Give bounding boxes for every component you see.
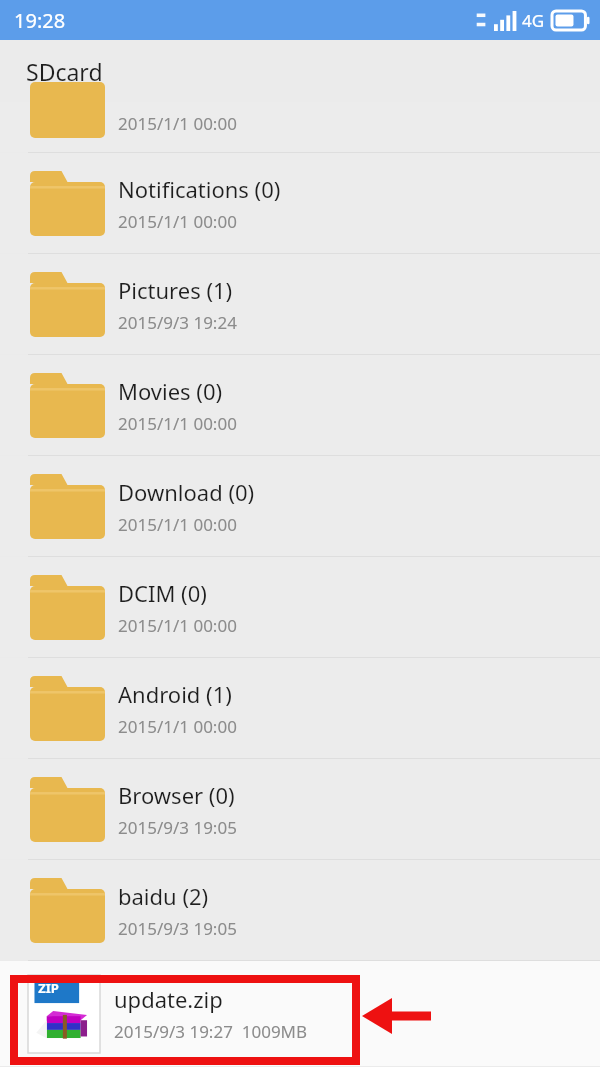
staticText: 2015/1/1 00:00 xyxy=(118,412,237,435)
staticText: Notifications (0) xyxy=(118,174,281,204)
staticText: Android (1) xyxy=(118,679,232,709)
staticText: update.zip xyxy=(114,984,223,1014)
staticText: Download (0) xyxy=(118,477,255,507)
staticText: Movies (0) xyxy=(118,376,223,406)
staticText: DCIM (0) xyxy=(118,578,207,608)
button[interactable]: Browser (0) xyxy=(0,759,600,859)
staticText: 2015/1/1 00:00 xyxy=(118,715,237,738)
staticText: 2015/1/1 00:00 xyxy=(118,513,237,536)
button[interactable]: Movies (0) xyxy=(0,355,600,455)
button[interactable]: Android (1) xyxy=(0,658,600,758)
button[interactable]: 2015/1/1 00:00 xyxy=(0,102,600,152)
staticText: 2015/9/3 19:05 xyxy=(118,917,237,940)
staticText: 2015/1/1 00:00 xyxy=(118,614,237,637)
staticText: 2015/1/1 00:00 xyxy=(118,112,237,135)
staticText: Browser (0) xyxy=(118,780,235,810)
button[interactable]: baidu (2) xyxy=(0,860,600,960)
staticText: Pictures (1) xyxy=(118,275,233,305)
staticText: ZIP xyxy=(38,979,59,997)
staticText: baidu (2) xyxy=(118,881,209,911)
staticText: SDcard xyxy=(26,56,103,87)
staticText: 2015/9/3 19:05 xyxy=(118,816,237,839)
button[interactable]: ZIP archive file xyxy=(0,961,600,1066)
other: ZIP archive file xyxy=(28,975,100,1053)
button[interactable]: Download (0) xyxy=(0,456,600,556)
staticText: 2015/1/1 00:00 xyxy=(118,210,237,233)
staticText: 19:28 xyxy=(14,7,66,34)
button[interactable]: Notifications (0) xyxy=(0,153,600,253)
button[interactable]: SDcard xyxy=(0,40,600,102)
staticText: 4G xyxy=(522,9,545,32)
staticText: 2015/9/3 19:24 xyxy=(118,311,237,334)
button[interactable]: Pictures (1) xyxy=(0,254,600,354)
staticText: 2015/9/3 19:27 1009MB xyxy=(114,1020,308,1043)
button[interactable]: DCIM (0) xyxy=(0,557,600,657)
